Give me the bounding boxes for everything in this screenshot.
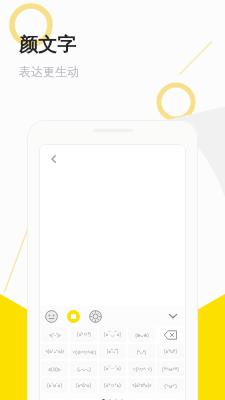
button[interactable]: ٩(๑•̀o•́๑)۶ [128, 378, 155, 393]
staticText: („ᵕᴗᵕ„) [77, 366, 91, 372]
button[interactable]: (๑¯◡¯๑) [99, 327, 126, 342]
staticText: (๑˘︶˘๑) [104, 365, 121, 372]
button[interactable]: (๑˃̵ᴗ˂̵) [99, 344, 126, 359]
button[interactable]: (๑ºΔº๑) [70, 378, 97, 393]
staticText: (๑•̀ㅁ•́๑) [104, 382, 121, 389]
button[interactable]: Kaomoji [67, 310, 80, 323]
staticText: (*^ω^*) [162, 366, 179, 372]
button[interactable]: ヾ(＠^▽^＠) [70, 344, 97, 359]
button[interactable]: ٩(´ᵕ`)۶ [41, 327, 68, 342]
button[interactable]: Collapse keyboard [166, 309, 180, 323]
staticText: (❀ᴗ❀) [135, 332, 149, 338]
button[interactable]: Settings [89, 310, 102, 323]
staticText: (๑ºΔº๑) [76, 382, 91, 389]
button[interactable]: ᕕ(ᐛ)ᕗ [41, 361, 68, 376]
staticText: ٩(๑•̀o•́๑)۶ [132, 382, 152, 389]
button[interactable]: (๑•̀ㅁ•́๑) [99, 378, 126, 393]
button[interactable]: ٩(๑❛ᴗ❛๑)۶ [41, 344, 68, 359]
button[interactable]: (๑•́ω•̀) [157, 344, 184, 359]
staticText: ヾ(＠^▽^＠) [71, 349, 96, 355]
staticText: ٩(๑❛ᴗ❛๑)۶ [45, 348, 65, 355]
button[interactable]: (๑´ω`๑) [41, 378, 68, 393]
staticText: ٩(´ᵕ`)۶ [49, 332, 61, 338]
button[interactable]: ヾ(^▽^ヾ) [128, 361, 155, 376]
staticText: 颜文字 [19, 33, 76, 57]
staticText: (๑•́ω•̀) [164, 348, 177, 355]
staticText: (•̀ᴗ•́) [137, 349, 146, 355]
staticText: 表达更生动 [19, 64, 79, 79]
button[interactable]: (*^ω^*) [157, 361, 184, 376]
button[interactable]: (•̀ᴗ•́) [128, 344, 155, 359]
button[interactable]: (๑•̀ㅂ•́) [70, 327, 97, 342]
button[interactable]: Backspace [157, 327, 184, 342]
staticText: ヾ(^▽^ヾ) [131, 366, 152, 372]
button[interactable]: Back [46, 151, 62, 167]
button[interactable]: Backspace [157, 327, 184, 342]
staticText: (๑•̀ㅂ•́) [77, 331, 91, 338]
staticText: (´•ω•`) [164, 383, 177, 389]
staticText: (๑´ω`๑) [47, 382, 62, 389]
button[interactable]: (´•ω•`) [157, 378, 184, 393]
button[interactable]: Emoji [45, 310, 58, 323]
staticText: (๑¯◡¯๑) [104, 331, 121, 338]
button[interactable]: (๑˘︶˘๑) [99, 361, 126, 376]
staticText: ᕕ(ᐛ)ᕗ [48, 366, 61, 372]
button[interactable]: (❀ᴗ❀) [128, 327, 155, 342]
staticText: (๑˃̵ᴗ˂̵) [107, 348, 118, 355]
button[interactable]: („ᵕᴗᵕ„) [70, 361, 97, 376]
